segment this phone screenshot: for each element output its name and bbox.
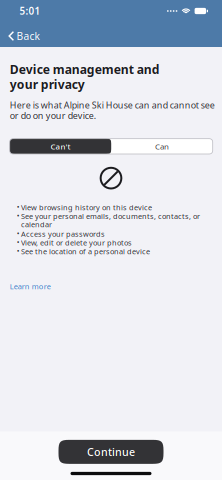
staticText: • [17, 246, 20, 256]
staticText: Can't [50, 141, 70, 152]
button[interactable]: Learn more [10, 281, 51, 291]
button[interactable]: Can't [10, 139, 111, 154]
staticText: Learn more [10, 281, 51, 291]
staticText: See the location of a personal device [21, 246, 150, 256]
staticText: Can [155, 141, 169, 152]
staticText: Here is what Alpine Ski House can and ca… [10, 99, 215, 122]
button[interactable]: Can [111, 139, 213, 154]
button[interactable]: Back [0, 23, 45, 45]
staticText: View, edit or delete your photos [21, 238, 132, 248]
staticText: • [17, 237, 20, 247]
staticText: See your personal emails, documents, con… [21, 211, 200, 229]
staticText: Device management and your privacy [10, 61, 160, 92]
staticText: • [17, 202, 20, 212]
button[interactable]: Continue [58, 440, 163, 464]
staticText: • [17, 228, 20, 238]
staticText: 5:01 [19, 4, 40, 18]
staticText: Access your passwords [21, 229, 105, 239]
staticText: Back [16, 29, 39, 43]
staticText: View browsing history on this device [21, 202, 152, 212]
staticText: • [17, 211, 20, 221]
staticText: Continue [87, 445, 135, 459]
